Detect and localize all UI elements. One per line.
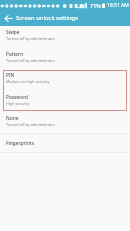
staticText: Turned off by administrator <box>6 122 56 127</box>
button[interactable]: Password <box>0 92 130 113</box>
staticText: 10:51 AM <box>107 2 129 9</box>
staticText: Screen unlock settings <box>16 14 79 22</box>
staticText: Medium to high security <box>6 79 50 84</box>
staticText: Turned off by administrator <box>6 36 56 41</box>
staticText: Swipe <box>6 29 20 36</box>
button[interactable]: Pattern <box>0 49 130 70</box>
staticText: Turned off by administrator <box>6 58 56 63</box>
button[interactable]: Back <box>0 10 16 26</box>
button[interactable]: Swipe <box>0 27 130 48</box>
staticText: None <box>6 115 19 122</box>
staticText: 71% <box>90 2 101 9</box>
button[interactable]: PIN <box>0 70 130 91</box>
staticText: Pattern <box>6 51 24 58</box>
staticText: PIN <box>6 72 15 79</box>
staticText: High security <box>6 101 30 106</box>
staticText: Password <box>6 94 29 101</box>
button[interactable]: None <box>0 113 130 134</box>
button[interactable]: Fingerprints <box>0 138 130 159</box>
staticText: Fingerprints <box>6 140 35 147</box>
